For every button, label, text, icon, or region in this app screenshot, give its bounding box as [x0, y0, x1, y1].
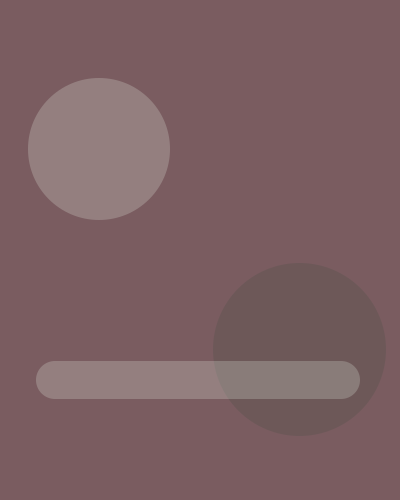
button[interactable]: Avatar — [28, 78, 170, 220]
button[interactable]: Search — [36, 361, 360, 399]
